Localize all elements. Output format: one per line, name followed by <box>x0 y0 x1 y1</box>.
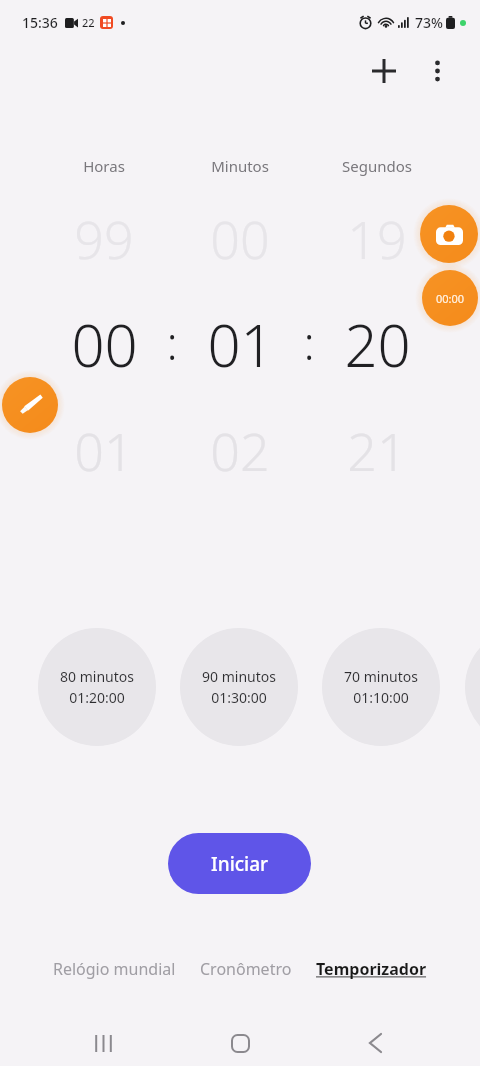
button[interactable]: Iniciar <box>168 833 311 894</box>
staticText: : <box>303 311 315 374</box>
button[interactable]: 01 <box>182 300 298 388</box>
staticText: Horas <box>83 156 125 176</box>
staticText: 70 minutos <box>344 667 418 686</box>
button[interactable]: Draw on screen <box>2 377 58 433</box>
staticText: 02 <box>210 415 270 486</box>
staticText: 01 <box>74 415 134 486</box>
staticText: 19 <box>347 203 407 274</box>
staticText: 22 <box>82 15 95 30</box>
button[interactable]: 00:00 <box>422 270 478 326</box>
staticText: 21 <box>347 415 407 486</box>
button[interactable]: 00 <box>46 300 162 388</box>
staticText: Temporizador <box>316 958 427 980</box>
button[interactable] <box>465 628 480 746</box>
staticText: 01 <box>207 305 274 384</box>
staticText: 99 <box>74 203 134 274</box>
staticText: Cronômetro <box>200 958 292 980</box>
button[interactable]: 90 minutos <box>180 628 298 746</box>
staticText: 80 minutos <box>60 667 134 686</box>
staticText: 01:20:00 <box>69 688 125 707</box>
staticText: Segundos <box>342 156 412 176</box>
staticText: 15:36 <box>22 13 58 32</box>
button[interactable]: Cronômetro <box>194 952 298 986</box>
button[interactable]: More options <box>412 46 462 96</box>
staticText: 01:10:00 <box>353 688 409 707</box>
staticText: 90 minutos <box>202 667 276 686</box>
button[interactable]: Home <box>210 1013 270 1066</box>
staticText: 00:00 <box>436 291 465 306</box>
button[interactable]: Screen recorder camera <box>420 205 478 263</box>
staticText: Iniciar <box>211 851 269 877</box>
button[interactable]: 80 minutos <box>38 628 156 746</box>
staticText: : <box>166 311 178 374</box>
staticText: 00 <box>71 305 138 384</box>
staticText: 00 <box>210 203 270 274</box>
staticText: 73% <box>415 13 443 32</box>
button[interactable]: 20 <box>319 300 435 388</box>
button[interactable]: 70 minutos <box>322 628 440 746</box>
staticText: 20 <box>344 305 411 384</box>
button[interactable]: Back <box>345 1013 405 1066</box>
button[interactable]: Relógio mundial <box>47 952 182 986</box>
button[interactable]: Add timer <box>358 45 410 97</box>
staticText: 01:30:00 <box>211 688 267 707</box>
staticText: Relógio mundial <box>53 958 176 980</box>
button[interactable]: Recents <box>73 1013 133 1066</box>
button[interactable]: Temporizador <box>310 952 433 986</box>
staticText: Minutos <box>211 156 269 176</box>
